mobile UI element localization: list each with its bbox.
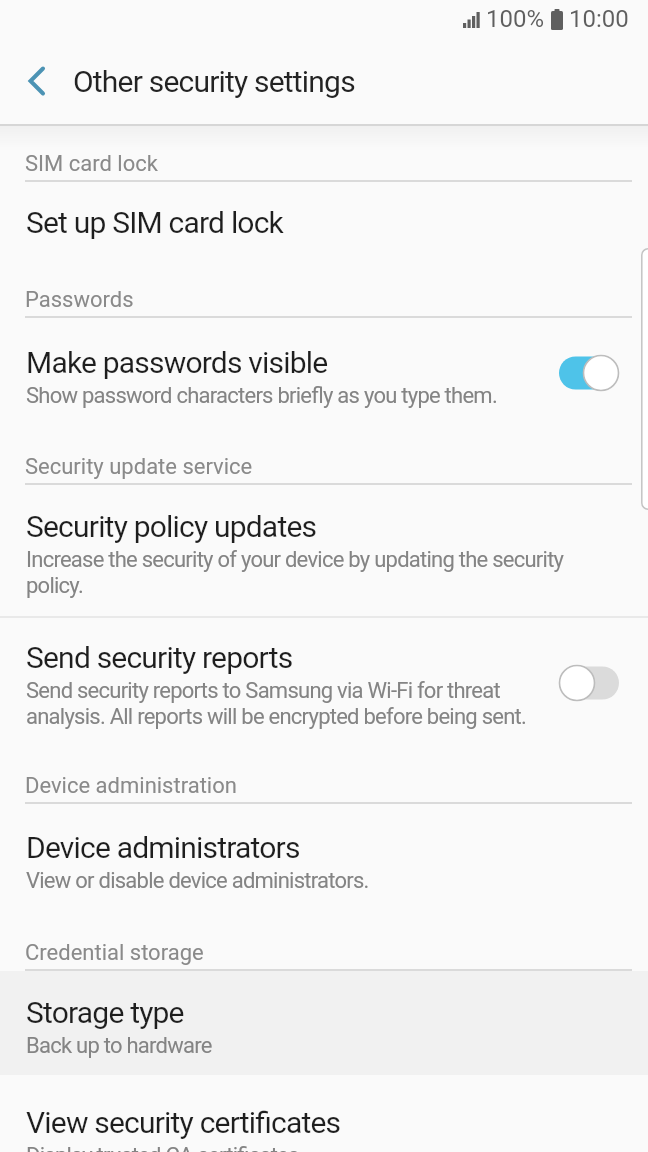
staticText: policy.	[26, 573, 83, 599]
staticText: Increase the security of your device by …	[26, 547, 564, 573]
button[interactable]	[559, 354, 619, 392]
staticText: 10:00	[569, 5, 629, 33]
staticText: 100%	[486, 5, 545, 33]
staticText: Show password characters briefly as you …	[26, 383, 497, 409]
button[interactable]	[559, 664, 619, 702]
staticText: Make passwords visible	[26, 345, 328, 380]
staticText: Display trusted CA certificates	[26, 1143, 299, 1152]
staticText: View security certificates	[26, 1105, 341, 1140]
staticText: Send security reports	[26, 640, 293, 675]
button[interactable]: Set up SIM card lock	[0, 182, 648, 261]
staticText: analysis. All reports will be encrypted …	[26, 704, 527, 730]
button[interactable]: Security policy updates	[0, 485, 648, 616]
staticText: Credential storage	[25, 940, 204, 966]
staticText: Device administration	[25, 773, 237, 799]
staticText: Security update service	[25, 454, 253, 480]
staticText: Security policy updates	[26, 509, 317, 544]
staticText: Set up SIM card lock	[26, 205, 283, 240]
button[interactable]: Device administrators	[0, 804, 648, 911]
staticText: Back up to hardware	[26, 1033, 212, 1059]
staticText: Other security settings	[73, 64, 355, 99]
staticText: Send security reports to Samsung via Wi-…	[26, 678, 500, 704]
button[interactable]: Make passwords visible	[0, 318, 648, 428]
button[interactable]: Send security reports	[0, 618, 648, 748]
button[interactable]: Storage type	[0, 971, 648, 1075]
staticText: SIM card lock	[25, 151, 158, 177]
staticText: Device administrators	[26, 830, 300, 865]
button[interactable]	[14, 59, 58, 103]
staticText: Storage type	[26, 995, 184, 1030]
staticText: View or disable device administrators.	[26, 868, 369, 894]
button[interactable]: View security certificates	[0, 1075, 648, 1152]
staticText: Passwords	[25, 287, 134, 313]
